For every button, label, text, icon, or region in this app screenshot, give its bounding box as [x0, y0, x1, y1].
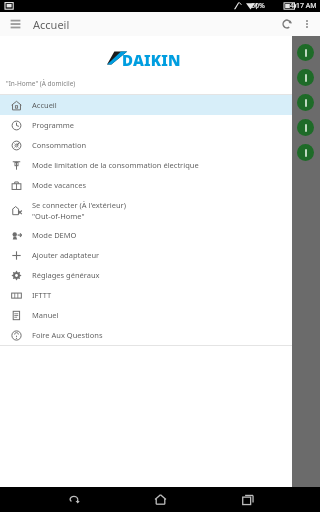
button[interactable]: Ajouter adaptateur	[0, 245, 320, 265]
staticText: Accueil	[32, 100, 57, 110]
staticText: Programme	[32, 120, 75, 130]
staticText: Foire Aux Questions	[32, 330, 103, 340]
button[interactable]: Mode DEMO	[0, 225, 320, 245]
button[interactable]: Consommation	[0, 135, 320, 155]
button[interactable]: More options	[297, 14, 317, 34]
button[interactable]: Se connecter (À l'extérieur)	[0, 195, 320, 225]
staticText: Consommation	[32, 140, 87, 150]
button[interactable]: Refresh	[277, 14, 297, 34]
button[interactable]: IFTTT	[0, 285, 320, 305]
staticText: Réglages généraux	[32, 270, 100, 280]
staticText: Mode DEMO	[32, 230, 77, 240]
button[interactable]: Mode limitation de la consommation élect…	[0, 155, 320, 175]
staticText: Se connecter (À l'extérieur)	[32, 200, 126, 210]
button[interactable]: Open navigation drawer	[6, 15, 24, 33]
button[interactable]: Close navigation drawer	[292, 36, 320, 487]
button[interactable]: Back	[58, 487, 88, 512]
button[interactable]: Programme	[0, 115, 320, 135]
button[interactable]: Réglages généraux	[0, 265, 320, 285]
staticText: 60%	[251, 1, 265, 11]
button[interactable]: Recent apps	[233, 487, 263, 512]
button[interactable]: Mode vacances	[0, 175, 320, 195]
staticText: Mode limitation de la consommation élect…	[32, 160, 199, 170]
staticText: Accueil	[33, 17, 70, 32]
staticText: 4:17 AM	[290, 1, 317, 11]
staticText: Ajouter adaptateur	[32, 250, 100, 260]
button[interactable]: Manuel	[0, 305, 320, 325]
staticText: Mode vacances	[32, 180, 87, 190]
button[interactable]: Home	[145, 487, 175, 512]
staticText: Manuel	[32, 310, 59, 320]
button[interactable]: Foire Aux Questions	[0, 325, 320, 345]
button[interactable]: Accueil	[0, 95, 320, 115]
staticText: DAIKIN	[122, 50, 181, 70]
staticText: "In-Home" (À domicile)	[6, 79, 76, 88]
staticText: IFTTT	[32, 290, 52, 300]
staticText: "Out-of-Home"	[32, 211, 85, 221]
